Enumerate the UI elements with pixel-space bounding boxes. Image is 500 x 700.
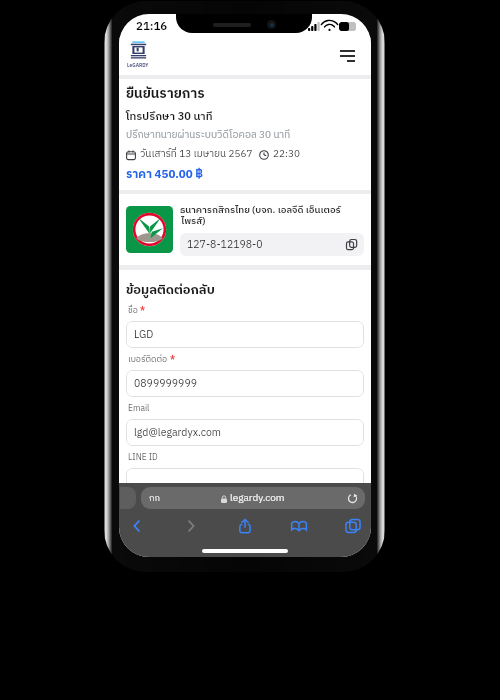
staticText: * (140, 304, 146, 318)
staticText: ชื่อ (128, 304, 138, 318)
button[interactable]: 127-8-12198-0 (180, 233, 364, 256)
staticText: legardy.com (230, 490, 285, 507)
staticText: เบอร์ติดต่อ (128, 353, 168, 367)
staticText: วันเสาร์ที่ 13 เมษายน 2567 (140, 146, 253, 163)
staticText: โทรปรึกษา 30 นาที (126, 108, 213, 126)
button[interactable]: Tabs (345, 518, 361, 534)
staticText: LGD (134, 326, 154, 343)
staticText: lgd@legardyx.com (134, 424, 221, 441)
button[interactable]: Forward (183, 518, 199, 534)
button[interactable]: Reload page (347, 493, 358, 504)
staticText: 0899999999 (134, 375, 197, 392)
button[interactable]: LGD (126, 321, 364, 348)
button[interactable]: lgd@legardyx.com (126, 419, 364, 446)
staticText: ปรึกษาทนายผ่านระบบวิดีโอคอล 30 นาที (126, 127, 291, 144)
staticText: ธนาคารกสิกรไทย (บจก. เอลจีดี เอ็นเตอร์ไพ… (180, 202, 364, 229)
staticText: ข้อมูลติดต่อกลับ (126, 279, 215, 300)
staticText: Email (128, 402, 150, 416)
button[interactable]: LeGARDY home (125, 41, 151, 70)
button[interactable]: Share (237, 518, 253, 534)
staticText: 21:16 (136, 17, 168, 36)
other: Copy account number (346, 239, 357, 250)
button[interactable]: Previous tab (120, 487, 136, 509)
button[interactable] (126, 468, 364, 495)
staticText: 22:30 (273, 146, 300, 163)
staticText: กก (149, 491, 160, 506)
button[interactable]: Back (129, 518, 145, 534)
button[interactable]: 0899999999 (126, 370, 364, 397)
button[interactable]: Bookmarks (291, 518, 307, 534)
button[interactable]: Menu (335, 45, 360, 67)
staticText: * (170, 353, 176, 367)
staticText: ยืนยันรายการ (126, 83, 205, 105)
staticText: ราคา 450.00 ฿ (126, 165, 204, 184)
staticText: 127-8-12198-0 (187, 236, 263, 253)
button[interactable]: กก (141, 487, 365, 509)
staticText: LeGARDY (127, 62, 149, 70)
staticText: LINE ID (128, 451, 158, 465)
